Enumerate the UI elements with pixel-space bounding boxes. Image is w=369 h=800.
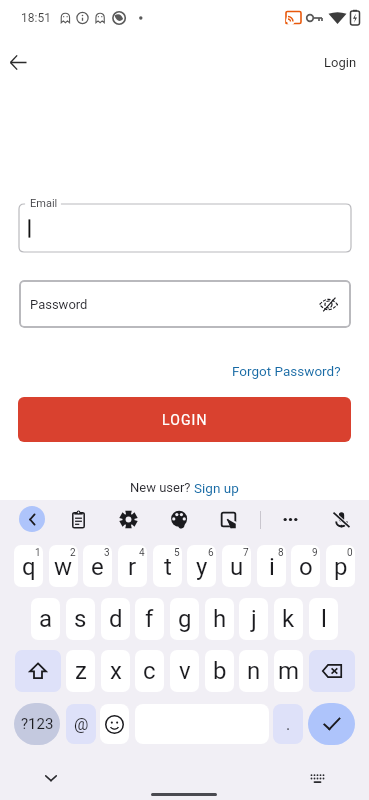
staticText: k [282, 605, 295, 633]
button[interactable]: g [170, 598, 199, 640]
button[interactable]: k [274, 598, 303, 640]
button[interactable]: a [31, 598, 60, 640]
button[interactable]: y [187, 545, 216, 587]
button[interactable]: Settings [112, 503, 144, 535]
button[interactable]: Shift [15, 650, 61, 692]
staticText: Password [30, 297, 88, 312]
staticText: 1 [35, 547, 41, 559]
staticText: a [39, 605, 53, 633]
button[interactable]: Clipboard [62, 503, 94, 535]
staticText: f [145, 605, 154, 633]
staticText: y [196, 553, 208, 581]
staticText: v [179, 657, 191, 685]
staticText: b [213, 657, 227, 685]
button[interactable]: Previous [19, 506, 45, 532]
button[interactable]: q [14, 545, 43, 587]
staticText: z [75, 657, 87, 685]
button[interactable]: v [170, 650, 199, 692]
button[interactable]: r [118, 545, 147, 587]
staticText: p [334, 553, 348, 581]
button[interactable]: z [66, 650, 95, 692]
button[interactable]: t [153, 545, 182, 587]
staticText: j [251, 605, 257, 633]
staticText: 3 [104, 547, 110, 559]
button[interactable]: s [66, 598, 95, 640]
staticText: LOGIN [162, 412, 208, 428]
staticText: x [110, 657, 122, 685]
button[interactable]: Sign up [194, 480, 239, 496]
button[interactable]: Theme [163, 503, 195, 535]
staticText: 2 [70, 547, 76, 559]
button[interactable]: Back [0, 41, 39, 83]
button[interactable]: l [309, 598, 338, 640]
staticText: 7 [243, 547, 249, 559]
staticText: ?123 [21, 715, 54, 733]
button[interactable]: More options [274, 503, 306, 535]
staticText: q [22, 553, 36, 581]
staticText: t [164, 553, 172, 581]
button[interactable]: i [257, 545, 286, 587]
button[interactable]: Show password [312, 288, 344, 320]
button[interactable]: @ [66, 704, 96, 744]
button[interactable]: c [135, 650, 164, 692]
staticText: w [54, 553, 73, 581]
staticText: h [213, 605, 227, 633]
button[interactable]: Stickers [212, 503, 244, 535]
button[interactable]: u [222, 545, 251, 587]
staticText: 18:51 [21, 11, 51, 25]
staticText: r [128, 553, 137, 581]
staticText: l [321, 605, 327, 633]
staticText: n [247, 657, 261, 685]
staticText: c [143, 657, 156, 685]
staticText: d [109, 605, 123, 633]
button[interactable]: m [274, 650, 303, 692]
staticText: s [74, 605, 87, 633]
button[interactable]: b [205, 650, 234, 692]
staticText: @ [74, 715, 89, 734]
button[interactable]: e [83, 545, 112, 587]
button[interactable]: w [49, 545, 78, 587]
staticText: 4 [139, 547, 145, 559]
button[interactable]: f [135, 598, 164, 640]
staticText: g [178, 605, 192, 633]
button[interactable]: n [239, 650, 268, 692]
button[interactable]: p [326, 545, 355, 587]
staticText: e [91, 553, 104, 581]
button[interactable]: Forgot Password? [232, 363, 341, 379]
button[interactable]: Enter [308, 703, 355, 745]
button[interactable]: Mute microphone [325, 503, 357, 535]
staticText: . [286, 715, 291, 734]
button[interactable]: ?123 [14, 703, 60, 745]
staticText: 6 [208, 547, 214, 559]
button[interactable]: j [239, 598, 268, 640]
button[interactable]: Switch keyboard [303, 764, 331, 792]
button[interactable]: Backspace [309, 650, 355, 692]
staticText: 5 [174, 547, 180, 559]
button[interactable]: x [101, 650, 130, 692]
staticText: m [278, 657, 300, 685]
staticText: u [230, 553, 244, 581]
button[interactable]: Login [324, 55, 357, 70]
button[interactable]: Password [19, 280, 351, 328]
button[interactable]: Emoji [100, 704, 129, 744]
staticText: Email [30, 197, 58, 210]
button[interactable]: d [101, 598, 130, 640]
staticText: 9 [312, 547, 318, 559]
button[interactable]: LOGIN [18, 397, 351, 442]
staticText: New user? [130, 480, 194, 495]
button[interactable]: . [273, 704, 303, 744]
button[interactable]: o [291, 545, 320, 587]
staticText: o [299, 553, 313, 581]
staticText: i [269, 553, 275, 581]
staticText: 0 [347, 547, 353, 559]
button[interactable]: Hide keyboard [37, 764, 65, 792]
button[interactable]: h [205, 598, 234, 640]
staticText: 8 [278, 547, 284, 559]
